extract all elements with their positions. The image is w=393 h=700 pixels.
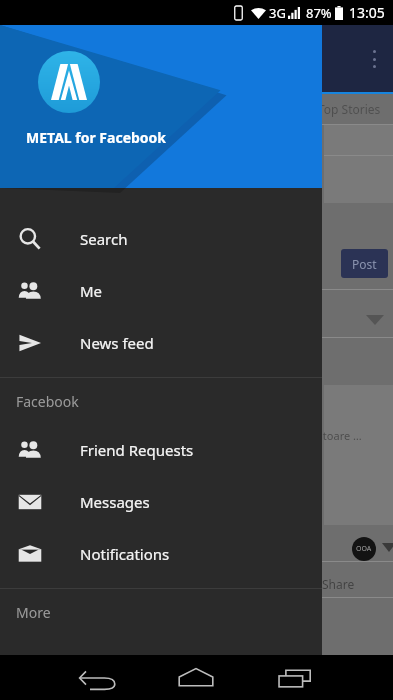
staticText: METAL for Facebook <box>26 128 167 147</box>
staticText: News feed <box>80 333 154 353</box>
staticText: Messages <box>80 492 150 512</box>
staticText: 3G <box>269 4 286 22</box>
staticText: Notifications <box>80 544 170 564</box>
button[interactable]: Home <box>176 665 216 691</box>
button[interactable]: Search <box>0 213 322 265</box>
button[interactable]: Recent apps <box>276 665 314 691</box>
button[interactable]: Post <box>341 249 388 278</box>
staticText: Friend Requests <box>80 440 194 460</box>
staticText: More <box>16 603 51 622</box>
staticText: Top Stories <box>318 101 381 117</box>
staticText: Share <box>322 576 355 592</box>
staticText: Facebook <box>16 392 79 411</box>
staticText: Search <box>80 229 128 249</box>
button[interactable]: Messages <box>0 476 322 528</box>
button[interactable]: Back <box>78 663 118 693</box>
staticText: OOA <box>356 544 372 554</box>
button[interactable]: Friend Requests <box>0 424 322 476</box>
staticText: 87% <box>306 4 332 22</box>
button[interactable]: More options <box>366 45 382 73</box>
staticText: Post <box>352 256 377 272</box>
button[interactable]: Me <box>0 265 322 317</box>
button[interactable]: News feed <box>0 317 322 369</box>
button[interactable]: Notifications <box>0 528 322 580</box>
staticText: Me <box>80 281 103 301</box>
staticText: 13:05 <box>349 3 385 22</box>
staticText: itoare … <box>320 428 362 443</box>
